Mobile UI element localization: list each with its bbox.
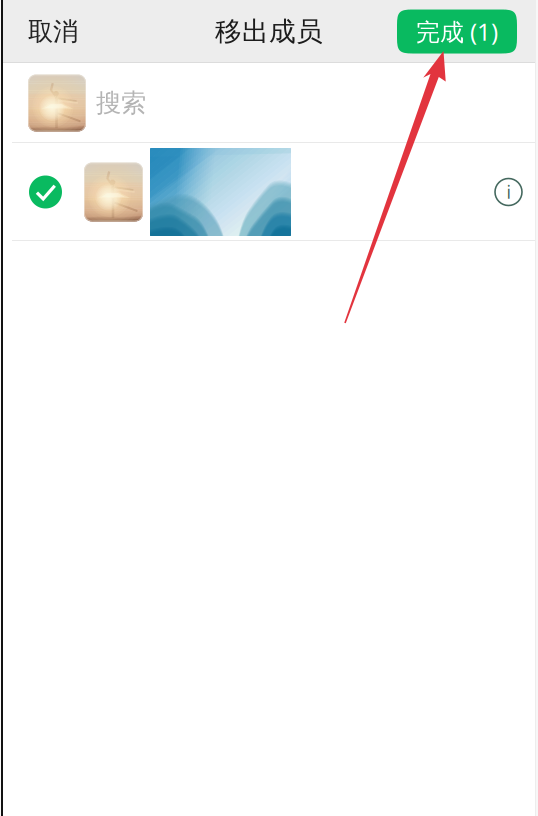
button[interactable]: 取消 (0, 0, 96, 63)
button[interactable]: i (0, 143, 538, 241)
staticText: i (506, 180, 510, 203)
button[interactable]: 完成 (1) (397, 9, 517, 53)
staticText: 取消 (28, 16, 78, 47)
button[interactable]: 搜索 (0, 63, 538, 143)
staticText: 搜索 (96, 87, 146, 118)
staticText: 完成 (1) (416, 16, 498, 47)
staticText: 移出成员 (215, 15, 323, 48)
